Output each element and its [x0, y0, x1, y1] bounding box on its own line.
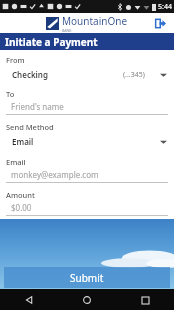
staticText: MountainOne: [62, 14, 128, 28]
staticText: Checking: [12, 69, 48, 80]
button[interactable]: Submit: [4, 267, 170, 288]
staticText: To: [6, 89, 15, 99]
button[interactable]: $0.00: [6, 200, 168, 216]
staticText: (...345): [123, 70, 145, 80]
button[interactable]: Friend's name: [6, 99, 168, 115]
button[interactable]: monkey@example.com: [6, 167, 168, 183]
staticText: Email: [12, 136, 34, 147]
staticText: Friend's name: [11, 101, 64, 112]
button[interactable]: Recent apps: [136, 291, 154, 309]
staticText: Email: [6, 157, 26, 167]
staticText: Initiate a Payment: [5, 35, 98, 49]
staticText: Send Method: [6, 122, 54, 132]
staticText: Amount: [6, 190, 35, 200]
staticText: $0.00: [11, 202, 32, 213]
button[interactable]: Back: [20, 291, 38, 309]
staticText: From: [6, 55, 25, 65]
staticText: monkey@example.com: [11, 169, 99, 180]
button[interactable]: Home: [78, 291, 96, 309]
button[interactable]: Checking: [0, 65, 174, 84]
staticText: BANK: [62, 28, 72, 33]
staticText: Submit: [70, 271, 104, 285]
staticText: 5:44: [158, 2, 172, 12]
button[interactable]: Email: [0, 132, 174, 151]
button[interactable]: Log out: [152, 15, 169, 32]
